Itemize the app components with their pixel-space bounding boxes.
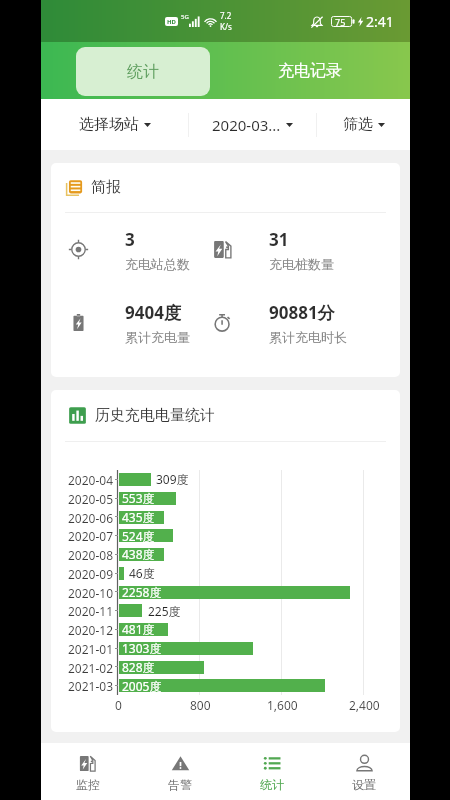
staticText: 2005度 (122, 678, 162, 694)
staticText: 历史充电电量统计 (95, 406, 215, 425)
staticText: 充电桩数量 (269, 256, 334, 272)
staticText: 2020-10 (68, 585, 114, 601)
staticText: 2020-09 (68, 566, 114, 582)
staticText: 2020-03... (212, 115, 281, 135)
staticText: 435度 (122, 509, 155, 525)
staticText: 524度 (122, 528, 155, 544)
button[interactable]: 3 (68, 213, 212, 286)
button[interactable]: 告警 (134, 743, 226, 800)
staticText: 225度 (148, 603, 181, 619)
staticText: 75 (335, 16, 346, 27)
staticText: 2021-01 (68, 641, 114, 657)
button[interactable]: 90881分 (212, 286, 392, 359)
staticText: 553度 (122, 490, 155, 506)
staticText: 2020-04 (68, 472, 114, 488)
staticText: 2020-07 (68, 528, 114, 544)
staticText: 309度 (156, 471, 189, 487)
staticText: 充电记录 (278, 61, 342, 81)
staticText: 1,600 (267, 697, 298, 713)
staticText: 2020-08 (68, 547, 114, 563)
staticText: 2020-11 (68, 603, 114, 619)
button[interactable]: 选择场站 (41, 99, 188, 150)
button[interactable]: 监控 (41, 743, 134, 800)
button[interactable]: 统计 (76, 47, 210, 96)
staticText: 告警 (168, 777, 192, 792)
staticText: 5G (181, 13, 189, 21)
staticText: 2258度 (122, 584, 162, 600)
staticText: 设置 (352, 777, 376, 792)
staticText: K/s (220, 21, 232, 32)
staticText: HD (167, 18, 176, 26)
staticText: 选择场站 (79, 115, 139, 134)
staticText: 2,400 (349, 697, 380, 713)
button[interactable]: 2020-03... (189, 99, 316, 150)
button[interactable]: 9404度 (68, 286, 212, 359)
staticText: 统计 (260, 777, 284, 792)
button[interactable]: 筛选 (317, 99, 410, 150)
staticText: 累计充电量 (125, 329, 190, 345)
staticText: 1303度 (122, 640, 162, 656)
staticText: 481度 (122, 621, 155, 637)
staticText: 简报 (91, 178, 121, 197)
staticText: 2:41 (366, 12, 394, 31)
staticText: 0 (115, 697, 122, 713)
staticText: 充电站总数 (125, 256, 190, 272)
button[interactable]: 31 (212, 213, 392, 286)
staticText: 31 (269, 228, 289, 251)
staticText: 3 (125, 228, 135, 251)
button[interactable]: 充电记录 (210, 42, 410, 99)
staticText: 7.2 (220, 10, 232, 21)
button[interactable]: 设置 (318, 743, 410, 800)
staticText: 46度 (129, 565, 155, 581)
staticText: 2020-05 (68, 491, 114, 507)
staticText: 筛选 (343, 115, 373, 134)
staticText: 2021-02 (68, 660, 114, 676)
staticText: 2020-12 (68, 622, 114, 638)
staticText: 438度 (122, 546, 155, 562)
staticText: 2021-03 (68, 678, 114, 694)
staticText: 2020-06 (68, 510, 114, 526)
staticText: 800 (190, 697, 211, 713)
staticText: 9404度 (125, 301, 181, 324)
button[interactable]: 统计 (226, 743, 318, 800)
staticText: 90881分 (269, 301, 335, 324)
staticText: 累计充电时长 (269, 329, 347, 345)
staticText: 监控 (76, 777, 100, 792)
staticText: 统计 (127, 62, 159, 82)
staticText: 828度 (122, 659, 155, 675)
